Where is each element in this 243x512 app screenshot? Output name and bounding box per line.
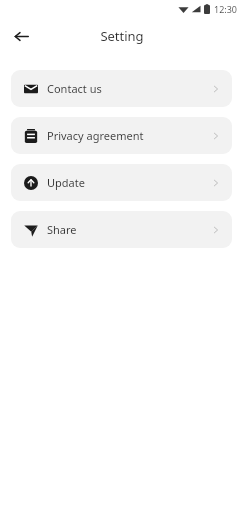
staticText: Setting bbox=[100, 27, 144, 45]
staticText: Share bbox=[47, 222, 211, 237]
button[interactable]: Back bbox=[7, 22, 35, 50]
button[interactable]: Update bbox=[11, 164, 232, 201]
staticText: Update bbox=[47, 175, 211, 190]
button[interactable]: Contact us bbox=[11, 70, 232, 107]
staticText: Contact us bbox=[47, 81, 211, 96]
staticText: Privacy agreement bbox=[47, 128, 211, 143]
staticText: 12:30 bbox=[214, 3, 238, 15]
button[interactable]: Privacy agreement bbox=[11, 117, 232, 154]
button[interactable]: Share bbox=[11, 211, 232, 248]
